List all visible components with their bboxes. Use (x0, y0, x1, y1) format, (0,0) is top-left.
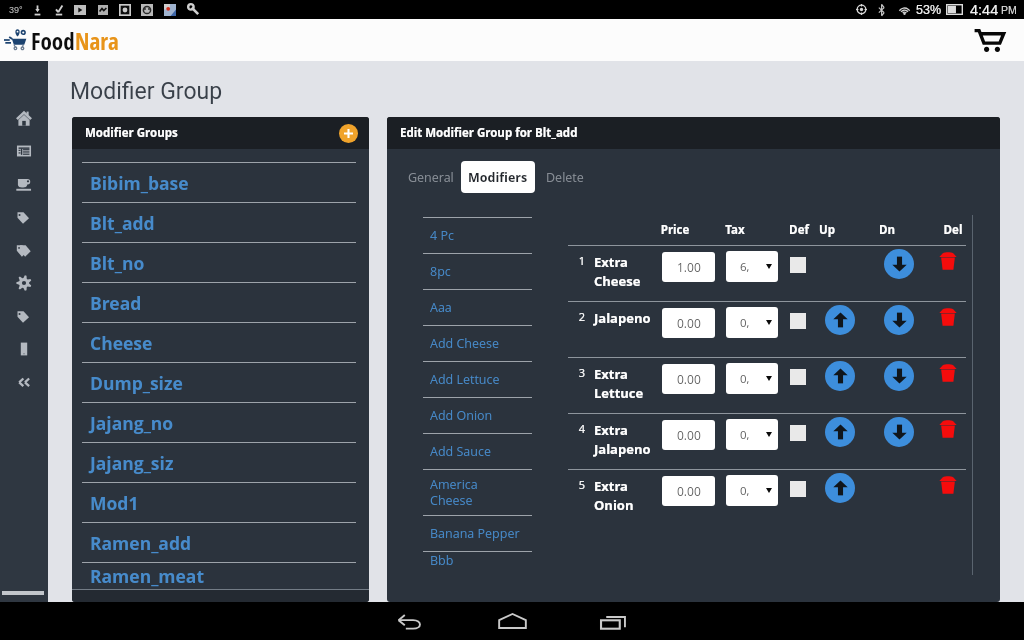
button[interactable]: 1.00 (662, 252, 715, 282)
button[interactable]: Settings (0, 266, 48, 299)
button[interactable]: Delete (939, 364, 957, 382)
button[interactable]: 0, (726, 307, 778, 338)
staticText: Blt_no (90, 251, 145, 275)
button[interactable]: Orders (0, 134, 48, 167)
staticText: 0, (740, 315, 750, 331)
button[interactable]: Ramen_meat (82, 563, 356, 589)
staticText: Add Cheese (430, 335, 500, 352)
button[interactable]: 0.00 (662, 476, 715, 506)
button[interactable]: Modifiers (0, 299, 48, 332)
button[interactable]: 0.00 (662, 420, 715, 450)
staticText: Add Lettuce (430, 371, 500, 388)
button[interactable]: Move up (825, 417, 855, 447)
button[interactable]: Jajang_no (82, 403, 356, 442)
button[interactable]: Recents (578, 602, 648, 640)
staticText: 0, (740, 483, 750, 499)
staticText: General (408, 169, 454, 186)
button[interactable]: America Cheese (423, 470, 532, 515)
button[interactable]: Add modifier group (339, 124, 358, 143)
staticText: Extra Lettuce (594, 365, 644, 402)
staticText: Extra Onion (594, 477, 634, 514)
staticText: Bibim_base (90, 171, 189, 195)
button[interactable]: Move down (884, 249, 914, 279)
staticText: Dump_size (90, 371, 183, 395)
staticText: 1 (576, 253, 588, 268)
staticText: 4 Pc (430, 227, 454, 244)
button[interactable]: Devices (0, 332, 48, 365)
button[interactable]: 4 Pc (423, 218, 532, 253)
staticText: Del (933, 222, 973, 238)
staticText: Modifier Groups (85, 125, 178, 141)
staticText: 0.00 (677, 427, 701, 443)
button[interactable]: 0, (726, 419, 778, 450)
button[interactable]: Categories (0, 233, 48, 266)
staticText: Bread (90, 291, 142, 315)
button[interactable]: Move up (825, 361, 855, 391)
button[interactable]: General (401, 161, 461, 193)
button[interactable]: Jajang_siz (82, 443, 356, 482)
staticText: Edit Modifier Group for Blt_add (400, 125, 578, 141)
button[interactable]: Bbb (423, 552, 532, 567)
button[interactable]: Cheese (82, 323, 356, 362)
button[interactable]: Move down (884, 305, 914, 335)
staticText: 53% (916, 3, 942, 17)
staticText: Modifiers (468, 169, 528, 186)
staticText: Add Sauce (430, 443, 491, 460)
button[interactable]: Collapse menu (0, 365, 48, 398)
staticText: 0, (740, 427, 750, 443)
button[interactable]: 0, (726, 475, 778, 506)
button[interactable]: Blt_add (82, 203, 356, 242)
button[interactable]: Delete (539, 161, 591, 193)
staticText: 4 (576, 421, 588, 436)
button[interactable]: Move down (884, 417, 914, 447)
staticText: Def (779, 222, 819, 238)
button[interactable]: Mod1 (82, 483, 356, 522)
staticText: Tax (715, 222, 755, 238)
button[interactable]: Delete (939, 308, 957, 326)
button[interactable]: Menu (0, 167, 48, 200)
button[interactable]: Add Cheese (423, 326, 532, 361)
button[interactable]: Move up (825, 473, 855, 503)
button[interactable]: Home (0, 101, 48, 134)
button[interactable]: Add Sauce (423, 434, 532, 469)
button[interactable]: Aaa (423, 290, 532, 325)
button[interactable]: Delete (939, 476, 957, 494)
button[interactable]: Dump_size (82, 363, 356, 402)
button[interactable]: Move down (884, 361, 914, 391)
button[interactable]: Ramen_add (82, 523, 356, 562)
staticText: 0, (740, 371, 750, 387)
staticText: Jalapeno (594, 309, 651, 327)
button[interactable]: Delete (939, 420, 957, 438)
button[interactable]: Delete (939, 252, 957, 270)
button[interactable]: 6, (726, 251, 778, 282)
staticText: 1.00 (677, 259, 701, 275)
button[interactable]: Blt_no (82, 243, 356, 282)
button[interactable]: Add Lettuce (423, 362, 532, 397)
staticText: Extra Jalapeno (594, 421, 651, 458)
button[interactable]: 0.00 (662, 364, 715, 394)
button[interactable]: Move up (825, 305, 855, 335)
button[interactable]: Back (375, 602, 445, 640)
staticText: Bbb (430, 552, 454, 567)
staticText: Jajang_siz (90, 451, 174, 475)
button[interactable]: Cart (972, 23, 1006, 57)
button[interactable]: Banana Pepper (423, 516, 532, 551)
staticText: Banana Pepper (430, 525, 520, 542)
staticText: 39° (9, 5, 23, 15)
button[interactable]: 8pc (423, 254, 532, 289)
button[interactable]: 0, (726, 363, 778, 394)
button[interactable]: Home (477, 602, 547, 640)
button[interactable]: Bibim_base (82, 163, 356, 202)
staticText: Modifier Group (70, 78, 223, 105)
staticText: 0.00 (677, 371, 701, 387)
button[interactable]: 0.00 (662, 308, 715, 338)
button[interactable]: Bread (82, 283, 356, 322)
button[interactable]: Add Onion (423, 398, 532, 433)
button[interactable]: Modifiers (461, 161, 535, 193)
button[interactable]: Items (0, 200, 48, 233)
